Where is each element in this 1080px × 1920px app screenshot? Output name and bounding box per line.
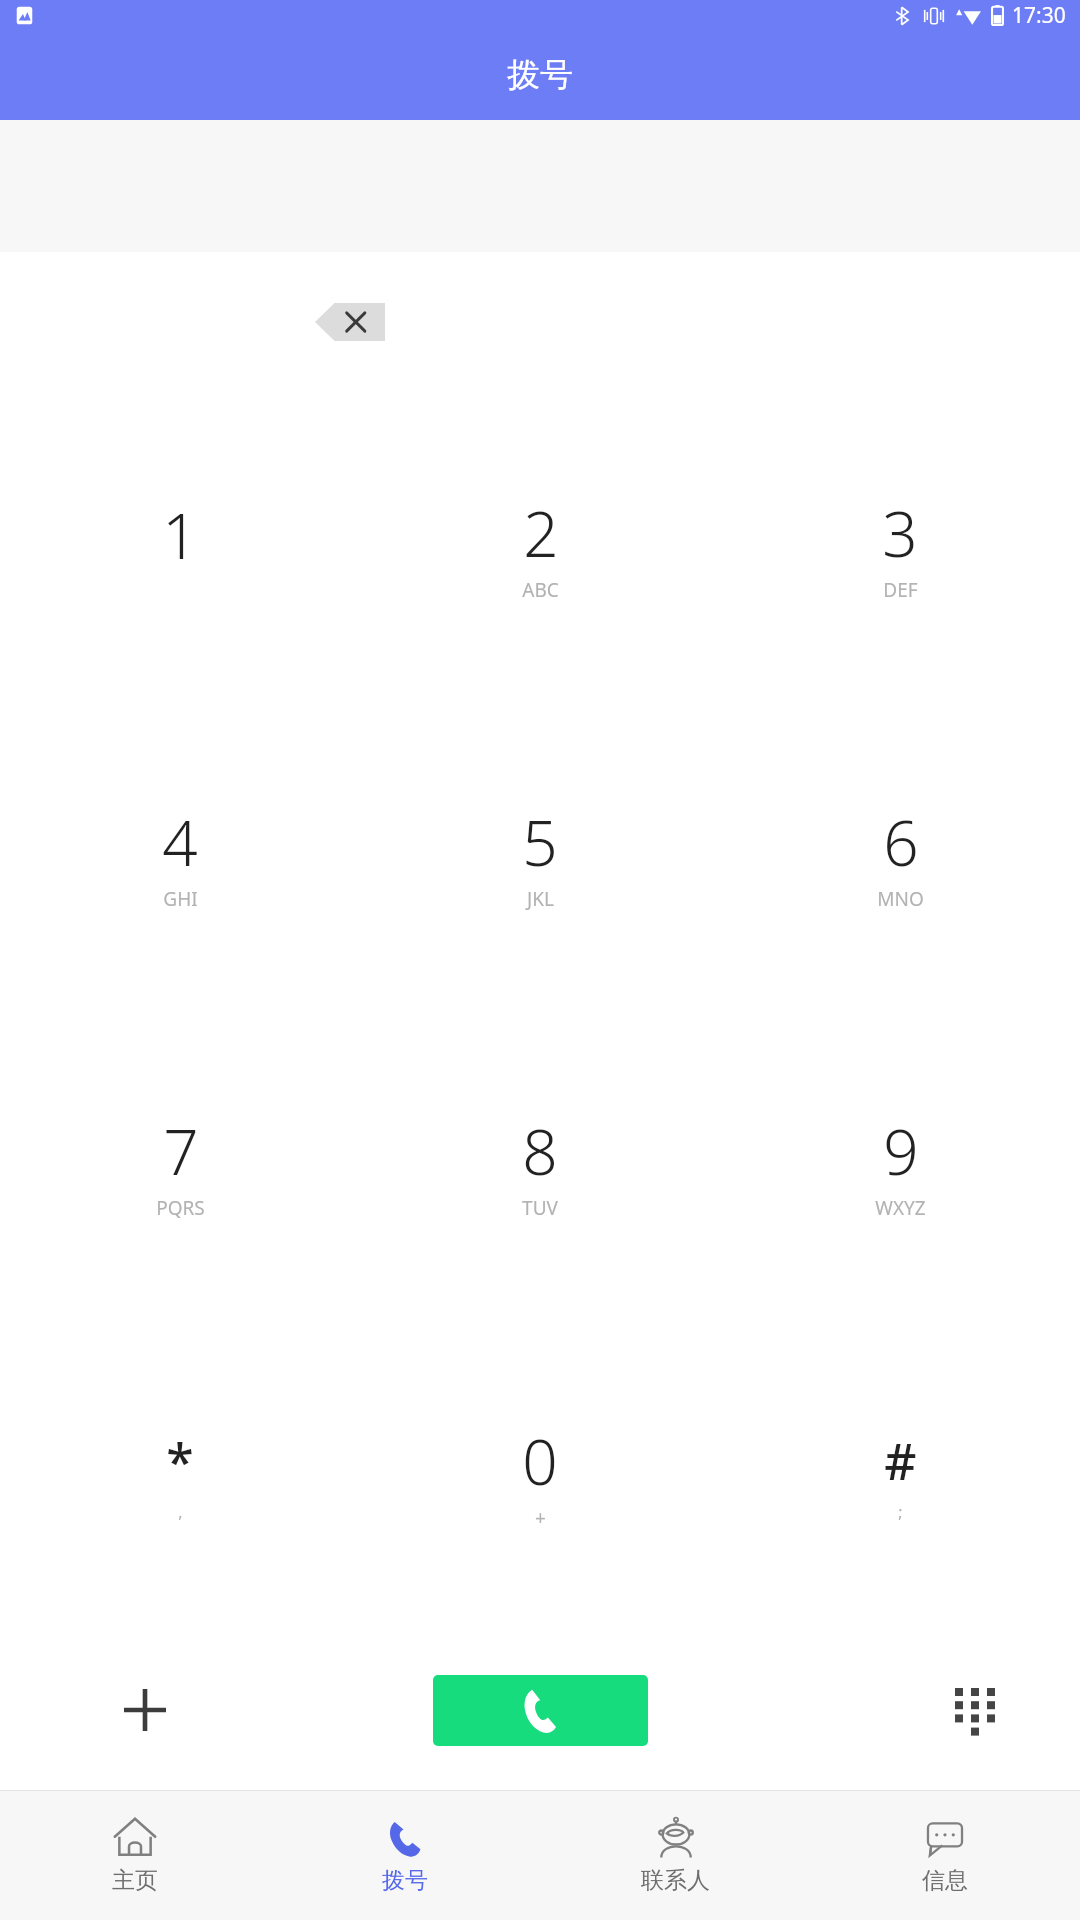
button[interactable]: 0 (360, 1320, 720, 1630)
staticText: 4 (162, 800, 198, 884)
button[interactable]: 联系人 (540, 1791, 810, 1920)
button[interactable]: 3 (720, 392, 1080, 701)
staticText: * (166, 1427, 194, 1495)
staticText: WXYZ (875, 1195, 926, 1221)
button[interactable]: 8 (360, 1010, 720, 1320)
staticText: 信息 (922, 1866, 968, 1895)
staticText: 6 (883, 800, 919, 884)
staticText: PQRS (156, 1195, 205, 1221)
button[interactable]: * (0, 1320, 360, 1630)
staticText: ABC (522, 577, 559, 603)
staticText: 17:30 (1012, 1, 1066, 30)
staticText: DEF (883, 577, 918, 603)
staticText: + (535, 1505, 546, 1531)
staticText: , (178, 1501, 183, 1523)
staticText: 7 (163, 1109, 199, 1193)
button[interactable]: 信息 (810, 1791, 1080, 1920)
staticText: 主页 (112, 1866, 158, 1895)
button[interactable]: 2 (360, 392, 720, 701)
staticText: 2 (523, 491, 559, 575)
staticText: 5 (522, 800, 558, 884)
button[interactable]: 7 (0, 1010, 360, 1320)
staticText: TUV (522, 1195, 558, 1221)
button[interactable]: Add contact (110, 1675, 180, 1745)
button[interactable]: 主页 (0, 1791, 270, 1920)
button[interactable]: 拨号 (270, 1791, 540, 1920)
staticText: JKL (527, 886, 554, 912)
staticText: 拨号 (507, 54, 573, 96)
button[interactable]: 9 (720, 1010, 1080, 1320)
staticText: 联系人 (641, 1866, 710, 1895)
button[interactable]: Dialpad (940, 1675, 1010, 1745)
staticText: # (884, 1427, 917, 1495)
staticText: 0 (522, 1419, 558, 1503)
staticText: 9 (883, 1109, 919, 1193)
staticText: 3 (882, 491, 918, 575)
staticText: 拨号 (382, 1866, 428, 1895)
staticText: ; (898, 1501, 903, 1523)
button[interactable]: 6 (720, 701, 1080, 1010)
staticText: GHI (163, 886, 198, 912)
staticText: 8 (522, 1109, 558, 1193)
button[interactable]: 4 (0, 701, 360, 1010)
button[interactable]: 5 (360, 701, 720, 1010)
button[interactable]: 1 (0, 392, 360, 701)
staticText: 1 (162, 493, 198, 577)
button[interactable]: # (720, 1320, 1080, 1630)
button[interactable]: Delete (315, 303, 385, 341)
staticText: MNO (877, 886, 924, 912)
button[interactable]: Call (433, 1675, 648, 1746)
